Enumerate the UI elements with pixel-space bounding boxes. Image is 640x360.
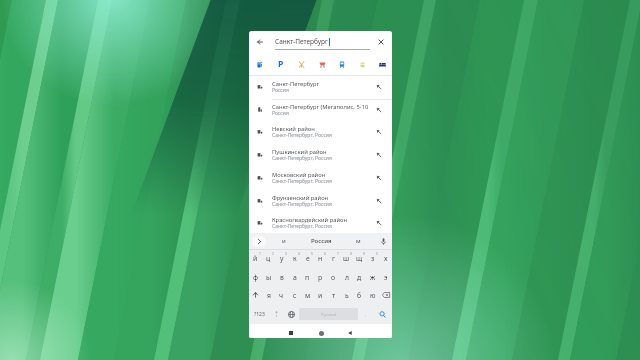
button[interactable]: и — [269, 233, 299, 249]
staticText: ж — [370, 273, 376, 282]
button[interactable]: Search — [373, 305, 391, 323]
button[interactable]: а — [288, 268, 301, 286]
button[interactable] — [269, 305, 283, 323]
button[interactable]: Shift — [249, 286, 262, 304]
staticText: Московский район — [272, 171, 326, 179]
staticText: д — [357, 273, 362, 282]
button[interactable]: Gas stations — [249, 53, 270, 75]
staticText: с — [293, 291, 297, 300]
button[interactable]: Санкт-Петербург (Мегаполис, 5-10 — [249, 99, 392, 122]
staticText: 4 — [298, 251, 300, 255]
staticText: Санкт-Петербург, Россия — [272, 223, 332, 230]
button[interactable]: Voice input — [375, 233, 391, 249]
button[interactable]: т — [327, 286, 340, 304]
button[interactable]: Красногвардейский район — [249, 212, 392, 235]
button[interactable]: Clear search — [374, 35, 387, 48]
button[interactable]: ?123 — [249, 305, 269, 323]
button[interactable]: Change keyboard language — [283, 305, 299, 323]
staticText: Санкт-Петербург (Мегаполис, 5-10 — [272, 103, 369, 111]
staticText: Санкт-Петербург, Россия — [272, 178, 332, 185]
staticText: 0 — [376, 251, 378, 255]
button[interactable]: д — [353, 268, 366, 286]
button[interactable]: я — [262, 286, 275, 304]
staticText: Невский район — [272, 125, 315, 133]
button[interactable]: н — [314, 249, 327, 267]
button[interactable]: Back — [253, 35, 267, 49]
button[interactable]: ч — [275, 286, 288, 304]
staticText: и — [318, 291, 323, 300]
button[interactable]: п — [301, 268, 314, 286]
button[interactable]: Shopping — [312, 53, 332, 75]
button[interactable]: Recent apps — [281, 324, 301, 338]
staticText: ?123 — [254, 311, 265, 318]
staticText: 5 — [311, 251, 313, 255]
button[interactable]: Русский — [299, 308, 358, 320]
button[interactable]: ш — [340, 249, 353, 267]
button[interactable]: Санкт-Петербург — [249, 76, 392, 99]
button[interactable]: ы — [262, 268, 275, 286]
staticText: б — [357, 291, 362, 300]
button[interactable]: Невский район — [249, 121, 392, 144]
button[interactable]: Московский район — [249, 167, 392, 190]
button[interactable]: ф — [249, 268, 262, 286]
button[interactable]: Back — [340, 324, 360, 338]
staticText: к — [293, 254, 297, 263]
button[interactable]: м — [343, 233, 373, 249]
button[interactable]: More suggestions — [252, 236, 266, 247]
staticText: Санкт-Петербург, Россия — [272, 132, 332, 139]
staticText: ю — [370, 291, 376, 300]
staticText: а — [293, 273, 297, 282]
button[interactable]: к — [288, 249, 301, 267]
button[interactable]: Backspace — [379, 286, 392, 304]
button[interactable]: Россия — [299, 233, 343, 249]
button[interactable]: ж — [366, 268, 379, 286]
button[interactable]: щ — [353, 249, 366, 267]
staticText: Россия — [272, 87, 289, 94]
button[interactable]: ц — [262, 249, 275, 267]
button[interactable]: б — [353, 286, 366, 304]
button[interactable]: в — [275, 268, 288, 286]
staticText: л — [345, 273, 349, 282]
button[interactable]: Home — [311, 324, 331, 338]
staticText: г — [332, 254, 335, 263]
staticText: Пушкинский район — [272, 148, 327, 156]
button[interactable]: э — [379, 268, 392, 286]
button[interactable]: р — [314, 268, 327, 286]
staticText: ч — [279, 291, 284, 300]
staticText: 7 — [337, 251, 339, 255]
button[interactable]: Hotels — [372, 53, 392, 75]
button[interactable]: Фрунзенский район — [249, 190, 392, 213]
button[interactable]: Пушкинский район — [249, 144, 392, 167]
staticText: и — [282, 237, 286, 245]
staticText: Санкт-Петербург, Россия — [272, 155, 332, 162]
staticText: Фрунзенский район — [272, 194, 329, 202]
staticText: р — [318, 273, 323, 282]
button[interactable]: Transit — [332, 53, 352, 75]
button[interactable]: з — [366, 249, 379, 267]
staticText: т — [332, 291, 336, 300]
staticText: Россия — [272, 110, 289, 117]
button[interactable]: х — [379, 249, 392, 267]
button[interactable]: г — [327, 249, 340, 267]
button[interactable]: й — [249, 249, 262, 267]
button[interactable]: и — [314, 286, 327, 304]
button[interactable]: с — [288, 286, 301, 304]
button[interactable]: у — [275, 249, 288, 267]
button[interactable]: л — [340, 268, 353, 286]
staticText: в — [280, 273, 284, 282]
button[interactable]: ATMs — [352, 53, 372, 75]
staticText: я — [267, 291, 271, 300]
staticText: Красногвардейский район — [272, 216, 348, 224]
button[interactable]: Restaurants — [291, 53, 312, 75]
button[interactable]: е — [301, 249, 314, 267]
button[interactable]: о — [327, 268, 340, 286]
staticText: о — [331, 273, 336, 282]
button[interactable]: ь — [340, 286, 353, 304]
button[interactable]: Parking — [270, 53, 291, 75]
staticText: Санкт-Петербург, Россия — [272, 201, 332, 208]
button[interactable]: м — [301, 286, 314, 304]
staticText: Санкт-Петербург — [275, 37, 328, 46]
staticText: 6 — [324, 251, 326, 255]
button[interactable]: ю — [366, 286, 379, 304]
